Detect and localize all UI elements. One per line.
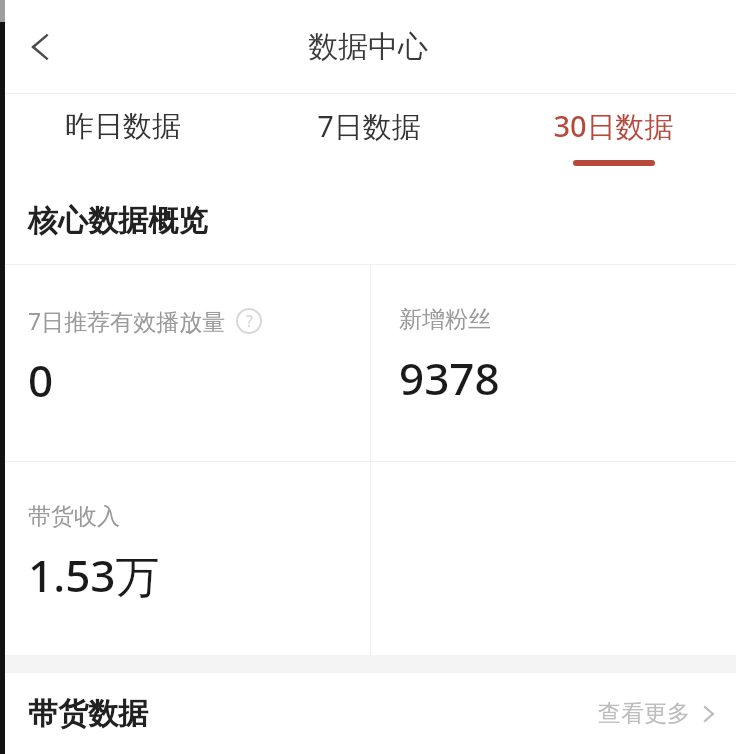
staticText: 带货收入 <box>28 502 120 531</box>
staticText: 昨日数据 <box>65 108 181 145</box>
button[interactable]: Back <box>8 15 72 79</box>
staticText: 数据中心 <box>308 28 428 66</box>
button[interactable]: 7日数据 <box>246 94 491 178</box>
staticText: 7日数据 <box>317 106 421 146</box>
button[interactable]: 带货数据 <box>0 673 736 754</box>
staticText: 0 <box>28 350 54 410</box>
button[interactable]: 昨日数据 <box>0 94 246 178</box>
staticText: 核心数据概览 <box>28 202 208 240</box>
staticText: 30日数据 <box>553 106 674 146</box>
staticText: 带货数据 <box>28 695 148 733</box>
button[interactable]: 30日数据 <box>491 94 736 178</box>
button[interactable]: 带货收入 <box>0 462 370 655</box>
staticText: 查看更多 <box>598 699 690 728</box>
button[interactable]: 新增粉丝 <box>371 265 736 461</box>
staticText: 9378 <box>399 348 500 408</box>
staticText: ? <box>246 310 253 332</box>
button[interactable]: 7日推荐有效播放量 <box>0 265 370 461</box>
staticText: 新增粉丝 <box>399 305 491 334</box>
staticText: 1.53万 <box>28 545 160 605</box>
staticText: 7日推荐有效播放量 <box>28 305 226 336</box>
